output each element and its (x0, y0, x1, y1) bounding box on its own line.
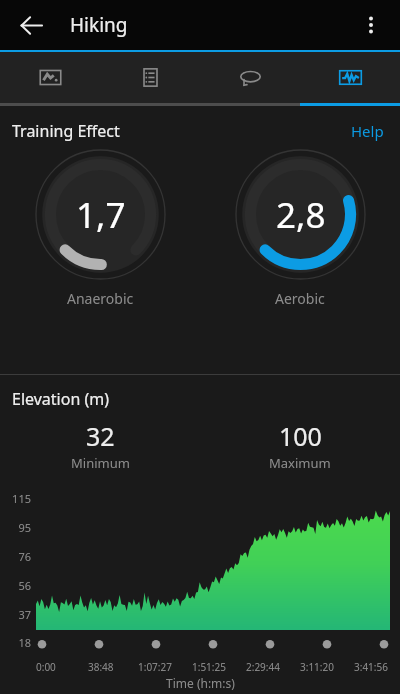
button[interactable]: Charts (300, 52, 400, 106)
staticText: 2,8 (276, 191, 326, 239)
staticText: 115 (4, 491, 31, 506)
staticText: 18 (4, 635, 31, 650)
staticText: 100 (279, 419, 322, 453)
staticText: 32 (86, 419, 115, 453)
button[interactable]: Map (0, 52, 100, 106)
staticText: 1:51:25 (192, 660, 226, 674)
staticText: Help (351, 121, 384, 141)
button[interactable]: Help (345, 117, 390, 145)
staticText: 37 (4, 607, 31, 622)
staticText: 3:41:56 (354, 660, 388, 674)
staticText: Time (h:m:s) (166, 675, 235, 691)
staticText: 1:07:27 (138, 660, 172, 674)
staticText: 95 (4, 520, 31, 535)
button[interactable]: Back (8, 2, 54, 48)
button[interactable]: Laps (200, 52, 300, 106)
staticText: 1,7 (76, 191, 126, 239)
button[interactable]: More options (348, 2, 394, 48)
staticText: Hiking (70, 12, 128, 38)
staticText: 56 (4, 578, 31, 593)
staticText: Aerobic (275, 289, 325, 308)
staticText: 76 (4, 549, 31, 564)
staticText: 38:48 (88, 660, 114, 674)
staticText: 0:00 (36, 660, 56, 674)
staticText: Anaerobic (67, 289, 134, 308)
staticText: 2:29:44 (246, 660, 280, 674)
button[interactable]: Details (100, 52, 200, 106)
staticText: Elevation (m) (12, 388, 110, 410)
staticText: Maximum (269, 454, 331, 472)
staticText: Minimum (71, 454, 130, 472)
staticText: 3:11:20 (300, 660, 334, 674)
staticText: Training Effect (12, 120, 120, 142)
